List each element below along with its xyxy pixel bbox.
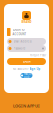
button[interactable]: LOGIN — [7, 58, 46, 65]
staticText: LOGIN — [22, 60, 30, 63]
button[interactable]: Facebook — [20, 73, 32, 78]
staticText: Email Address — [13, 40, 31, 43]
staticText: Facebook — [24, 72, 32, 79]
staticText: Password — [13, 47, 25, 50]
staticText: Forgot Pass? — [30, 53, 46, 57]
button[interactable]: Forgot Pass? — [7, 52, 46, 57]
staticText: LOGIN TO — [12, 28, 24, 31]
button[interactable]: No account? — [12, 67, 40, 71]
button[interactable]: Password — [7, 45, 46, 52]
staticText: Sign Up — [29, 67, 40, 71]
staticText: BRAND — [21, 20, 31, 24]
staticText: LOGIN APP UI — [13, 103, 40, 109]
staticText: ACCOUNT — [12, 32, 26, 36]
staticText: No account? — [12, 67, 28, 71]
button[interactable]: Email Address — [7, 38, 46, 45]
